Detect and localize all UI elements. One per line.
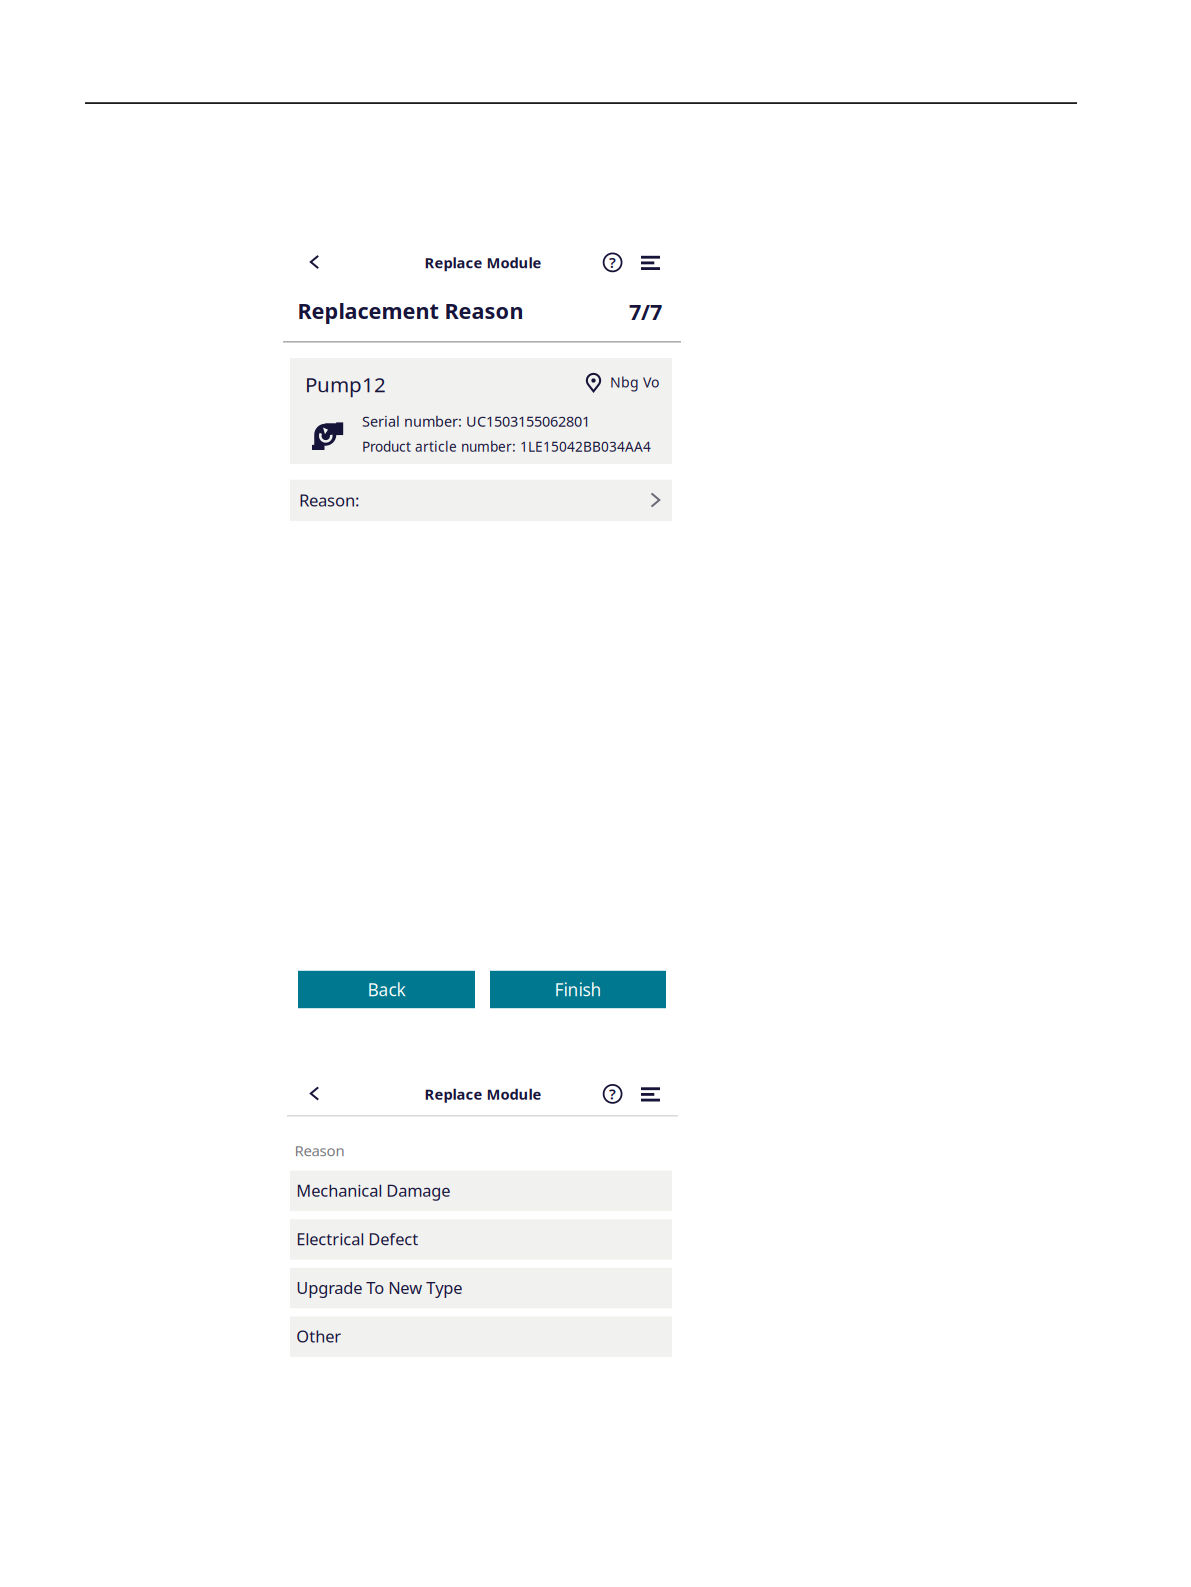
- button[interactable]: Menu: [633, 240, 667, 286]
- staticText: Replacement Reason: [298, 296, 524, 325]
- button[interactable]: Back: [294, 239, 334, 285]
- staticText: ?: [609, 1084, 616, 1104]
- button[interactable]: Back: [298, 971, 475, 1008]
- button[interactable]: Menu: [633, 1071, 667, 1117]
- staticText: Product article number: 1LE15042BB034AA4: [362, 437, 651, 456]
- button[interactable]: Help: [598, 1071, 628, 1117]
- staticText: Replace Module: [424, 1084, 541, 1104]
- button[interactable]: Reason:: [290, 480, 672, 521]
- staticText: Back: [367, 978, 405, 1001]
- button[interactable]: Mechanical Damage: [290, 1171, 672, 1211]
- button[interactable]: Other: [290, 1316, 672, 1357]
- button[interactable]: Upgrade To New Type: [290, 1268, 672, 1308]
- staticText: Other: [296, 1325, 341, 1347]
- staticText: Serial number: UC1503155062801: [362, 411, 590, 431]
- staticText: Pump12: [305, 370, 386, 398]
- button[interactable]: Back: [294, 1070, 334, 1116]
- button[interactable]: Finish: [490, 971, 666, 1008]
- staticText: Nbg Vo: [610, 372, 659, 392]
- staticText: Finish: [554, 978, 601, 1001]
- button[interactable]: Electrical Defect: [290, 1219, 672, 1260]
- staticText: Mechanical Damage: [296, 1179, 450, 1201]
- staticText: Electrical Defect: [296, 1228, 418, 1250]
- staticText: Replace Module: [424, 253, 541, 272]
- staticText: ?: [609, 253, 616, 272]
- staticText: Upgrade To New Type: [296, 1276, 462, 1299]
- staticText: Reason: [294, 1140, 344, 1161]
- staticText: Reason:: [299, 489, 359, 511]
- staticText: 7/7: [629, 297, 662, 326]
- button[interactable]: Help: [598, 239, 628, 285]
